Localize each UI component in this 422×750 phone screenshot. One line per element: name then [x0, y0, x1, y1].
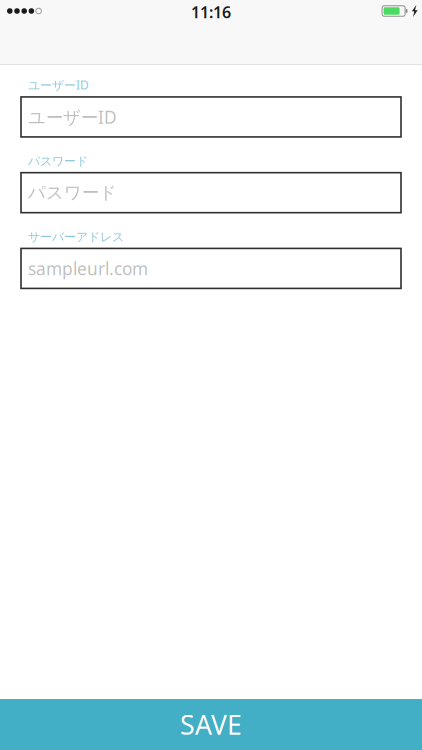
staticText: sampleurl.com — [28, 257, 148, 280]
button[interactable]: ユーザーID — [21, 97, 401, 137]
staticText: パスワード — [28, 154, 88, 169]
button[interactable]: SAVE — [0, 699, 422, 750]
button[interactable]: sampleurl.com — [21, 248, 401, 288]
staticText: サーバーアドレス — [28, 230, 124, 244]
staticText: パスワード — [28, 182, 117, 203]
staticText: ユーザーID — [28, 77, 89, 93]
button[interactable]: パスワード — [21, 173, 401, 213]
staticText: 11:16 — [191, 1, 231, 23]
staticText: ユーザーID — [28, 105, 117, 128]
staticText: SAVE — [180, 707, 242, 742]
